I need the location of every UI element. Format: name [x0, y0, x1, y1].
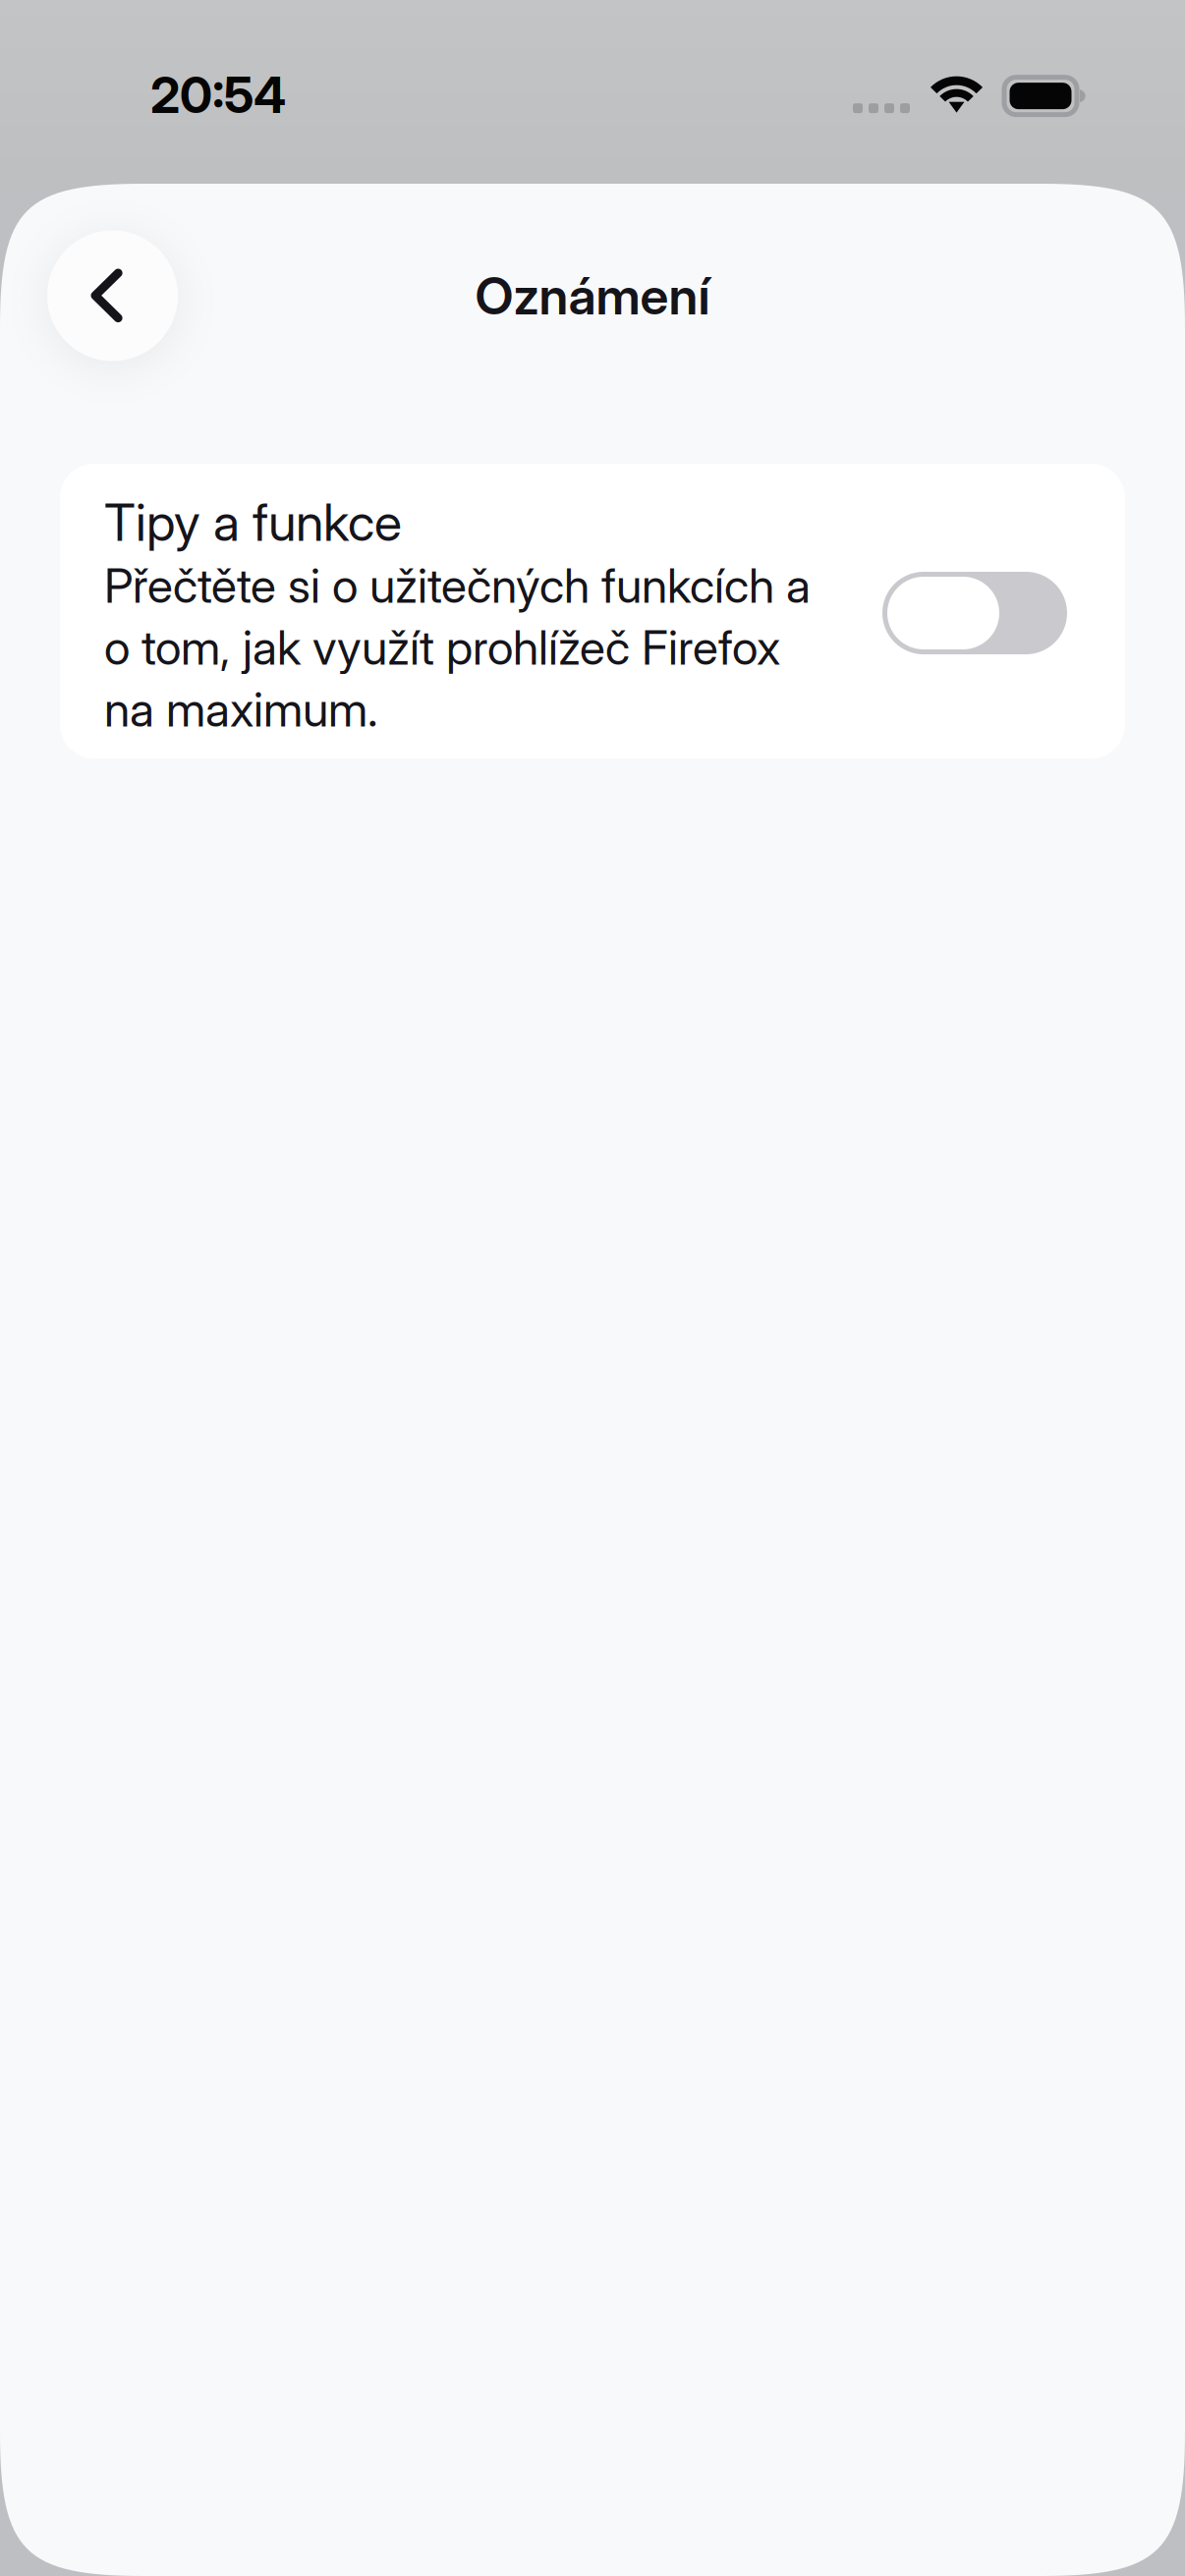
- staticText: Přečtěte si o užitečných funkcích a o to…: [104, 557, 811, 738]
- staticText: Tipy a funkce: [104, 491, 402, 553]
- staticText: 20:54: [150, 65, 286, 125]
- button[interactable]: Tipy a funkce, vypnuto: [882, 491, 1067, 654]
- staticText: Oznámení: [475, 265, 710, 327]
- button[interactable]: Back: [47, 230, 178, 361]
- button[interactable]: Tipy a funkce: [60, 464, 1125, 759]
